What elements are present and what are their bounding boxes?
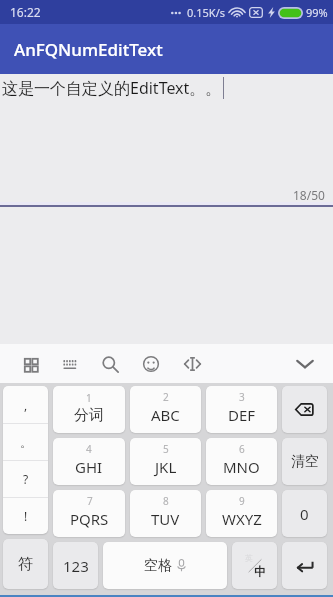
staticText: 。 (20, 435, 32, 450)
staticText: 空格 (144, 557, 172, 575)
button[interactable]: Backspace (282, 386, 327, 433)
button[interactable]: 2 (130, 386, 201, 433)
staticText: 0.15K/s (187, 5, 225, 20)
staticText: 清空 (291, 453, 319, 471)
button[interactable]: Keyboard layout (54, 348, 86, 380)
button[interactable]: 123 (53, 542, 98, 589)
button[interactable]: 英 (232, 542, 277, 589)
staticText: 1 (86, 391, 92, 405)
staticText: 18/50 (293, 187, 325, 203)
button[interactable]: Search (94, 348, 126, 380)
staticText: WXYZ (222, 509, 262, 529)
button[interactable]: 8 (130, 490, 201, 537)
button[interactable]: , (3, 386, 48, 423)
button[interactable]: 0 (282, 490, 327, 537)
staticText: 123 (63, 556, 89, 576)
button[interactable]: 4 (53, 438, 125, 485)
staticText: 16:22 (10, 4, 41, 20)
staticText: 99% (306, 5, 328, 20)
button[interactable]: Hide keyboard (289, 348, 321, 380)
staticText: 符 (18, 555, 33, 574)
button[interactable]: ? (3, 461, 48, 497)
staticText: 7 (87, 494, 93, 508)
button[interactable]: 9 (206, 490, 277, 537)
button[interactable]: Emoji (135, 348, 167, 380)
button[interactable]: Move cursor (176, 348, 208, 380)
staticText: 5 (163, 442, 169, 456)
staticText: 9 (239, 494, 245, 508)
staticText: 中 (254, 564, 266, 579)
staticText: TUV (151, 509, 180, 529)
staticText: ABC (151, 405, 180, 425)
staticText: 0 (300, 504, 309, 524)
staticText: ? (23, 471, 29, 487)
button[interactable]: 6 (206, 438, 277, 485)
staticText: GHI (75, 457, 103, 477)
button[interactable]: 7 (53, 490, 125, 537)
button[interactable]: 3 (206, 386, 277, 433)
staticText: AnFQNumEditText (14, 38, 163, 61)
staticText: 这是一个自定义的EditText。。 (2, 77, 222, 99)
staticText: MNO (223, 457, 260, 477)
staticText: 3 (239, 390, 245, 404)
staticText: JKL (155, 457, 177, 477)
staticText: ! (24, 508, 28, 524)
button[interactable]: 5 (130, 438, 201, 485)
staticText: , (24, 397, 28, 413)
button[interactable]: ! (3, 498, 48, 534)
button[interactable]: 。 (3, 424, 48, 460)
staticText: 6 (239, 442, 245, 456)
staticText: 4 (86, 442, 92, 456)
staticText: 分词 (74, 406, 104, 425)
button[interactable]: 1 (53, 386, 125, 433)
staticText: PQRS (70, 509, 109, 529)
button[interactable]: Apps (14, 348, 46, 380)
button[interactable]: Enter (282, 542, 327, 589)
button[interactable]: 清空 (282, 438, 327, 485)
staticText: 2 (163, 390, 169, 404)
staticText: 8 (163, 494, 169, 508)
staticText: DEF (228, 405, 256, 425)
button[interactable]: 符 (3, 539, 48, 589)
staticText: 英 (245, 553, 253, 563)
button[interactable]: 空格 (103, 542, 227, 589)
